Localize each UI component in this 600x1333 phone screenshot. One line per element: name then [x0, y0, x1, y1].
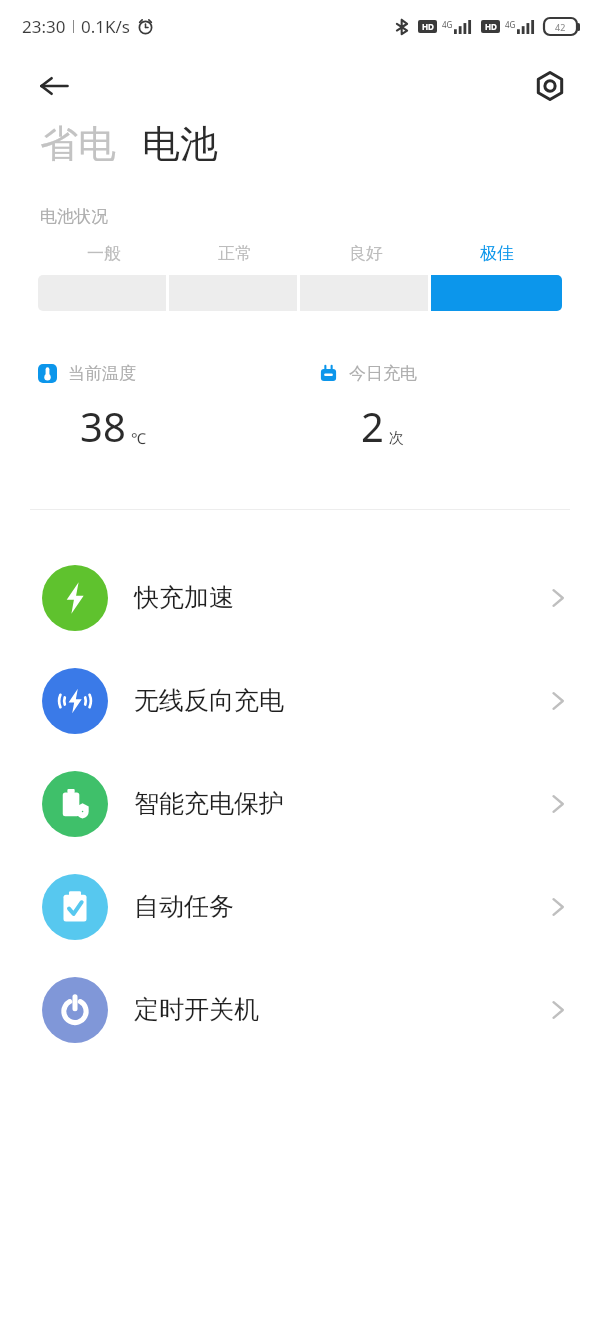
button[interactable]: Settings [526, 62, 574, 110]
staticText: HD [485, 21, 497, 32]
staticText: 42 [555, 21, 566, 33]
button[interactable]: 正常 [169, 243, 300, 264]
button[interactable] [431, 275, 562, 311]
staticText: 0.1K/s [81, 15, 130, 38]
staticText: 4G [442, 19, 453, 30]
staticText: 23:30 [22, 15, 66, 38]
button[interactable]: 极佳 [431, 243, 562, 264]
staticText: 正常 [218, 243, 252, 264]
button[interactable]: 自动任务 [0, 855, 600, 958]
staticText: 快充加速 [134, 582, 234, 613]
staticText: ℃ [131, 428, 146, 448]
staticText: 电池状况 [40, 206, 108, 227]
staticText: 次 [389, 429, 404, 448]
staticText: 一般 [87, 243, 121, 264]
button[interactable]: 定时开关机 [0, 958, 600, 1061]
button[interactable]: 电池 [142, 120, 218, 168]
staticText: 4G [505, 19, 516, 30]
button[interactable]: 一般 [38, 243, 169, 264]
staticText: 极佳 [480, 243, 514, 264]
staticText: 智能充电保护 [134, 788, 284, 819]
staticText: 无线反向充电 [134, 685, 284, 716]
staticText: 定时开关机 [134, 994, 259, 1025]
button[interactable]: 良好 [300, 243, 431, 264]
button[interactable]: 省电 [40, 120, 116, 168]
staticText: 自动任务 [134, 891, 234, 922]
staticText: 2 [361, 399, 384, 453]
staticText: 省电 [40, 120, 116, 168]
button[interactable]: 快充加速 [0, 546, 600, 649]
button[interactable]: Back [30, 62, 78, 110]
button[interactable]: 无线反向充电 [0, 649, 600, 752]
staticText: HD [422, 21, 434, 32]
staticText: 当前温度 [68, 363, 136, 384]
staticText: 38 [80, 399, 126, 453]
button[interactable]: 智能充电保护 [0, 752, 600, 855]
staticText: 今日充电 [349, 363, 417, 384]
staticText: 良好 [349, 243, 383, 264]
staticText: 电池 [142, 120, 218, 168]
